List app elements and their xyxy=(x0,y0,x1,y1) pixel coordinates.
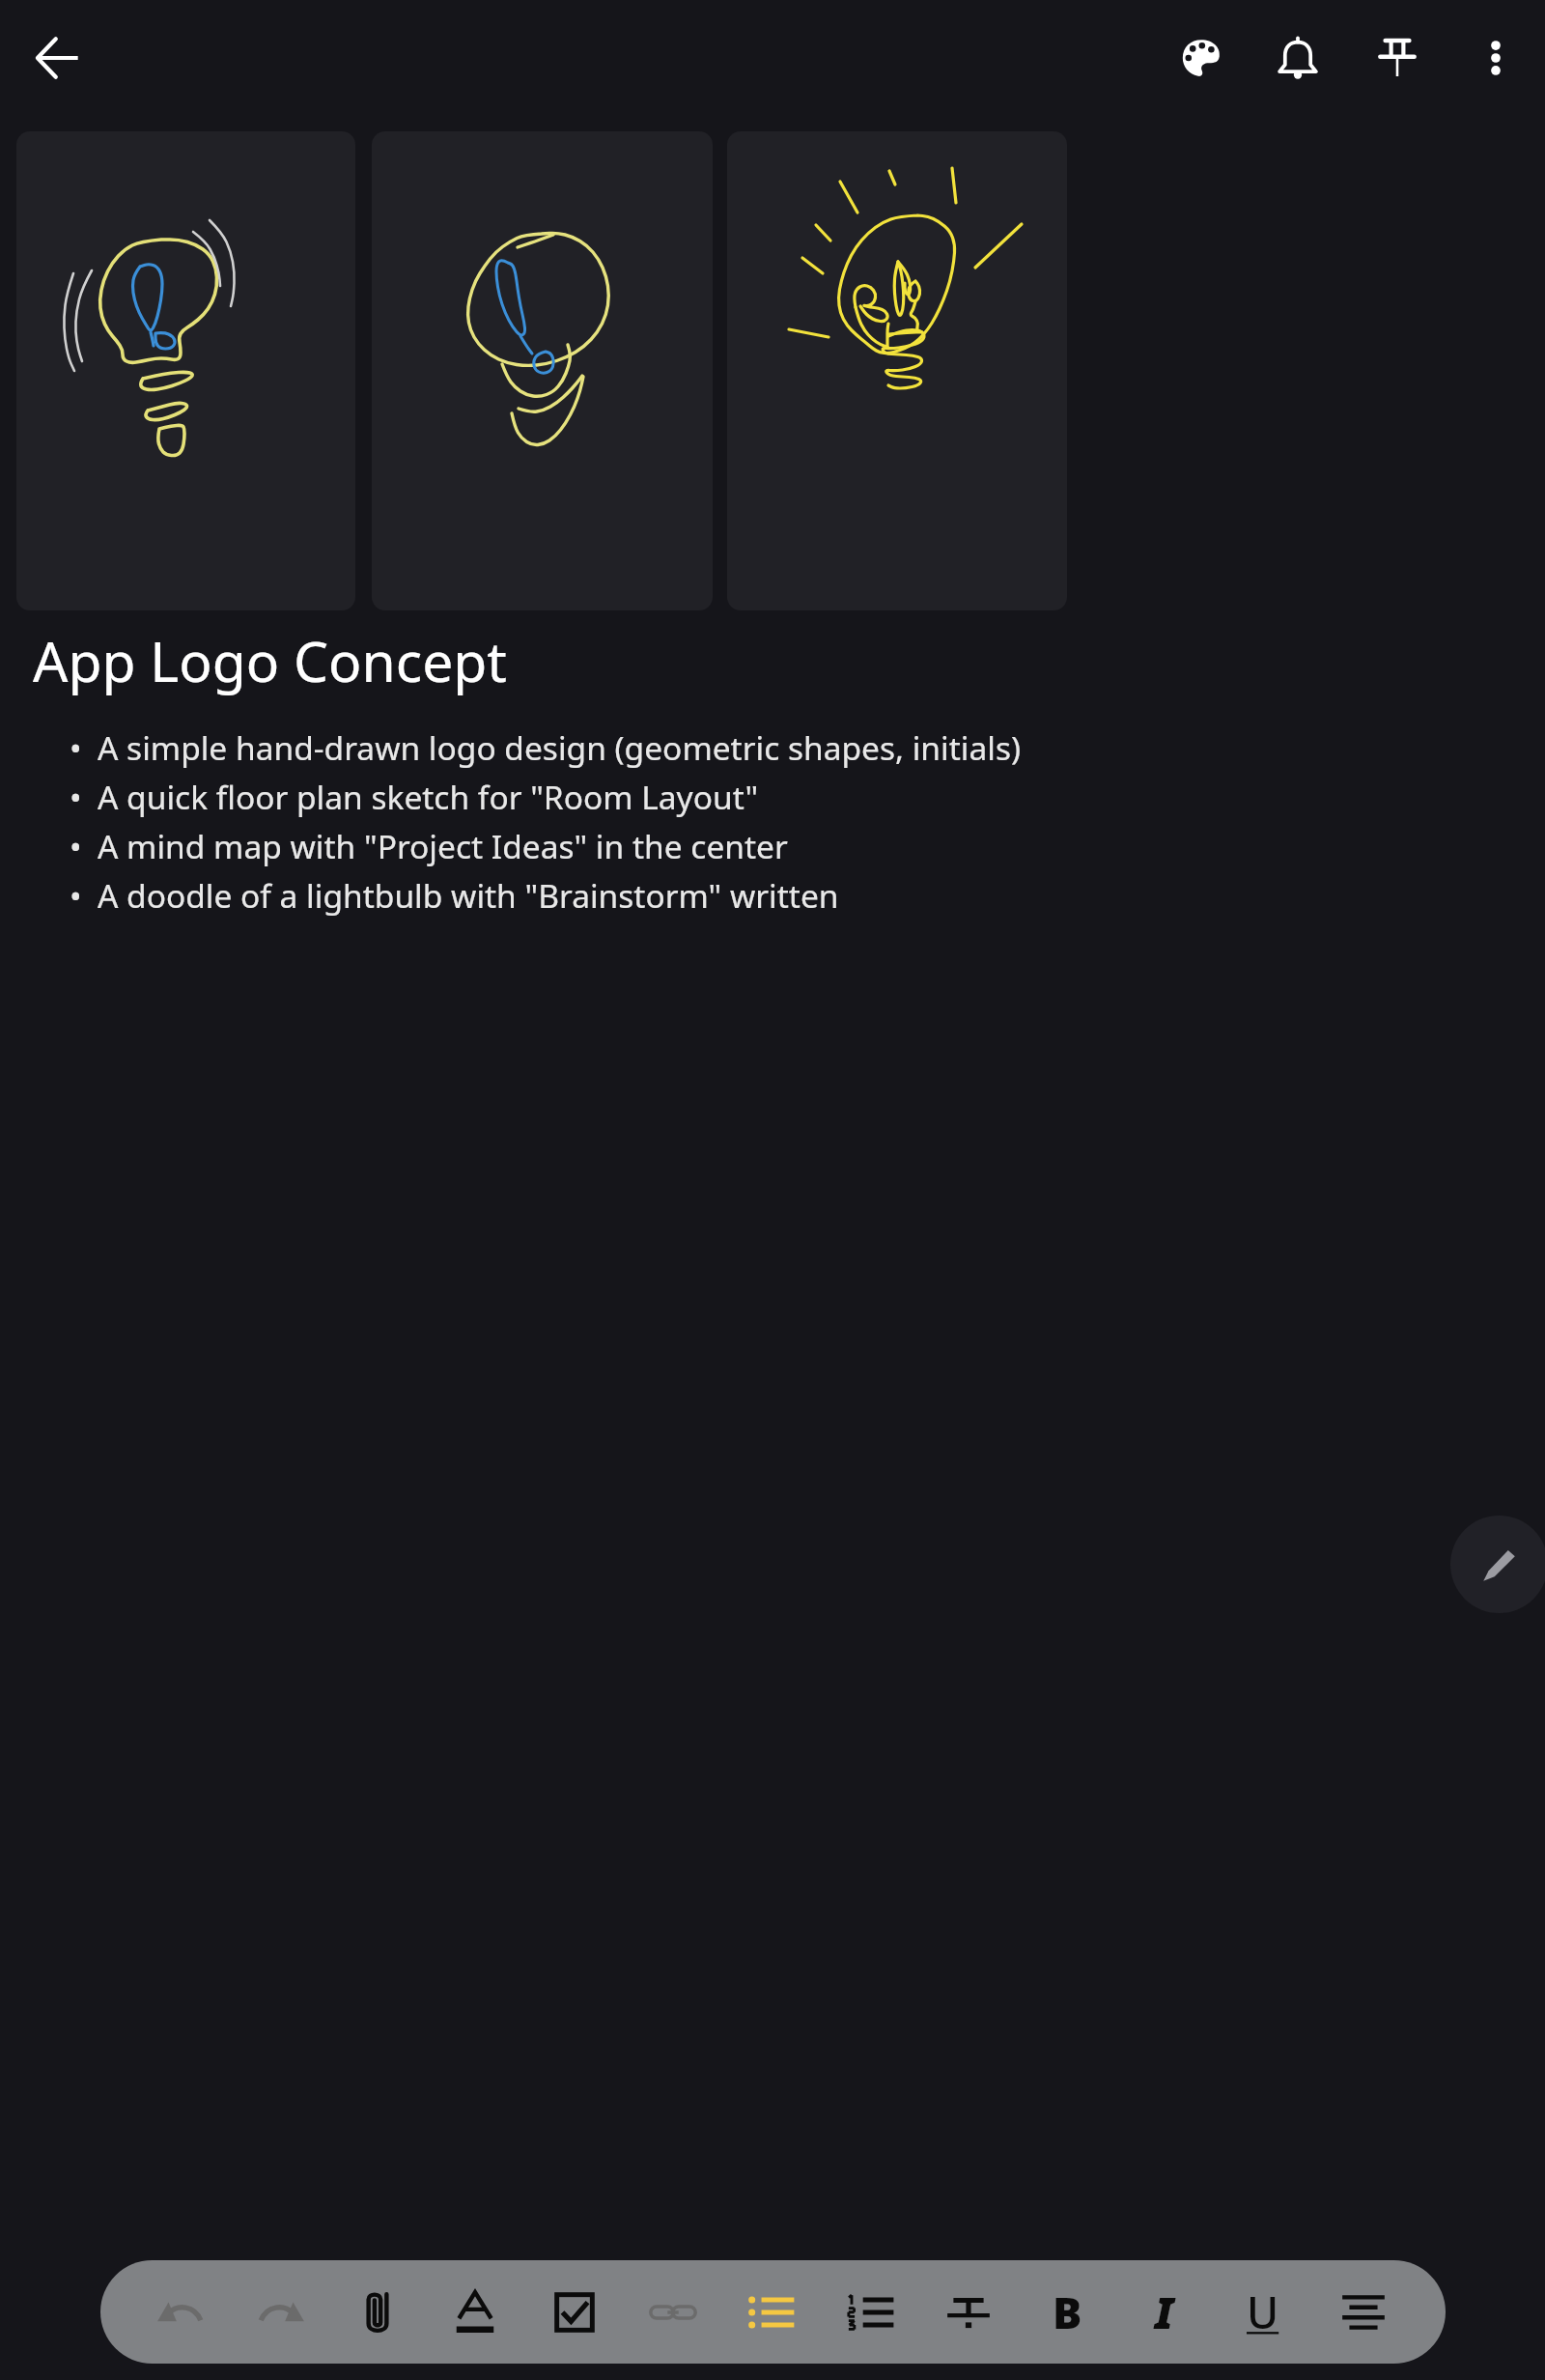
staticText: A mind map with "Project Ideas" in the c… xyxy=(98,824,788,868)
button[interactable]: Bold xyxy=(1025,2268,1110,2356)
button[interactable]: Sketch image xyxy=(16,131,355,610)
button[interactable]: Checkboxes xyxy=(532,2268,617,2356)
staticText: • xyxy=(70,775,82,819)
button[interactable]: Italic xyxy=(1122,2268,1207,2356)
button[interactable]: Underline xyxy=(1221,2268,1306,2356)
staticText: A quick floor plan sketch for "Room Layo… xyxy=(98,775,759,819)
button[interactable]: Undo xyxy=(138,2268,223,2356)
button[interactable]: More options xyxy=(1449,12,1542,104)
button[interactable]: Numbered list xyxy=(829,2268,913,2356)
button[interactable]: Text color xyxy=(433,2268,518,2356)
button[interactable]: Back xyxy=(12,12,104,104)
staticText: I xyxy=(1155,2282,1174,2341)
staticText: • xyxy=(70,725,82,770)
staticText: A simple hand-drawn logo design (geometr… xyxy=(98,725,1021,770)
button[interactable]: Pin note xyxy=(1351,12,1444,104)
staticText: • xyxy=(70,824,82,868)
button[interactable]: Insert link xyxy=(631,2268,716,2356)
staticText: A doodle of a lightbulb with "Brainstorm… xyxy=(98,873,839,918)
button[interactable]: Edit xyxy=(1450,1516,1545,1613)
staticText: B xyxy=(1053,2282,1082,2341)
button[interactable]: Sketch image xyxy=(727,131,1067,610)
staticText: App Logo Concept xyxy=(33,623,507,698)
button[interactable]: Text alignment xyxy=(1321,2268,1406,2356)
button[interactable]: Redo xyxy=(239,2268,323,2356)
button[interactable]: Strikethrough xyxy=(926,2268,1011,2356)
button[interactable]: Attach file xyxy=(335,2268,420,2356)
staticText: U xyxy=(1247,2282,1279,2341)
button[interactable]: Sketch image xyxy=(372,131,713,610)
button[interactable]: Change colour xyxy=(1155,12,1248,104)
button[interactable]: Reminder xyxy=(1251,12,1344,104)
staticText: • xyxy=(70,873,82,918)
button[interactable]: Bulleted list xyxy=(730,2268,815,2356)
